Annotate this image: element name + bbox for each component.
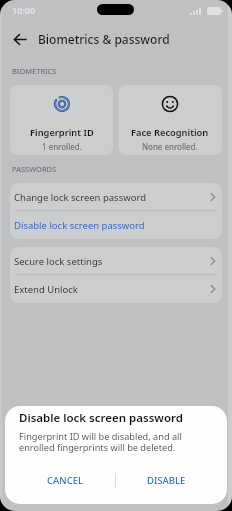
button[interactable]: CANCEL <box>16 465 115 495</box>
button[interactable]: Secure lock settings <box>10 247 222 275</box>
button[interactable] <box>10 29 30 49</box>
staticText: Extend Unlock <box>14 283 78 296</box>
staticText: Change lock screen password <box>14 191 147 204</box>
staticText: Disable lock screen password <box>19 410 183 426</box>
staticText: Face Recognition <box>131 126 209 139</box>
staticText: PASSWORDS <box>12 164 57 174</box>
staticText: 1 enrolled. <box>42 141 82 152</box>
staticText: BIOMETRICS <box>12 66 57 76</box>
button[interactable]: DISABLE <box>116 465 216 495</box>
staticText: CANCEL <box>47 474 84 487</box>
button[interactable]: Extend Unlock <box>10 275 222 303</box>
staticText: Biometrics & password <box>38 31 170 47</box>
button[interactable]: Change lock screen password <box>10 183 222 211</box>
staticText: DISABLE <box>147 474 186 487</box>
staticText: Disable lock screen password <box>14 219 145 232</box>
staticText: Fingerprint ID will be disabled, and all… <box>19 430 182 454</box>
staticText: None enrolled. <box>142 141 198 152</box>
staticText: Fingerprint ID <box>30 126 94 139</box>
staticText: 10:00 <box>12 4 36 16</box>
button[interactable]: Fingerprint ID <box>10 85 113 155</box>
staticText: Secure lock settings <box>14 255 103 268</box>
button[interactable]: Face Recognition <box>118 85 222 155</box>
button[interactable]: Disable lock screen password <box>10 211 222 239</box>
